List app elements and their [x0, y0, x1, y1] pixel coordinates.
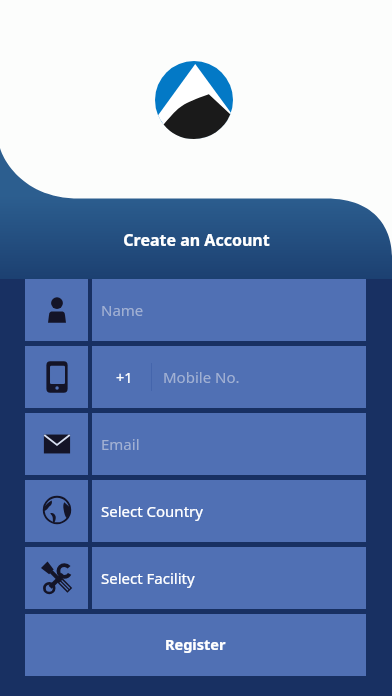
button[interactable]: Name — [25, 279, 88, 341]
staticText: Create an Account — [123, 229, 270, 251]
button[interactable]: +1 — [92, 346, 366, 408]
button[interactable]: Select Country — [25, 480, 88, 542]
staticText: +1 — [116, 367, 133, 387]
button[interactable]: Select Facility — [92, 547, 366, 609]
button[interactable]: Email — [25, 413, 88, 475]
staticText: Email — [101, 434, 140, 454]
staticText: Select Country — [101, 501, 203, 521]
button[interactable]: Mobile No. — [25, 346, 88, 408]
staticText: Register — [165, 634, 226, 654]
button[interactable]: Register — [25, 614, 366, 676]
button[interactable]: Select Country — [92, 480, 366, 542]
button[interactable]: Select Facility — [25, 547, 88, 609]
button[interactable]: Email — [92, 413, 366, 475]
button[interactable]: Name — [92, 279, 366, 341]
staticText: Mobile No. — [163, 367, 240, 387]
staticText: Select Facility — [101, 568, 195, 588]
staticText: Name — [101, 300, 144, 320]
